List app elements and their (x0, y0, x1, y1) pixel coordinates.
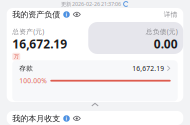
staticText: 16,672.19 (12, 36, 67, 52)
staticText: i (65, 115, 67, 122)
staticText: 总负债(元) (146, 27, 178, 36)
staticText: 存款 (19, 64, 33, 72)
staticText: 100.00% (19, 76, 47, 85)
staticText: 详情 (164, 10, 178, 19)
button[interactable]: Info (60, 115, 70, 122)
button[interactable]: Toggle balance visibility (70, 11, 81, 18)
button[interactable]: Refresh (123, 1, 129, 7)
staticText: 我的本月收支 (12, 114, 60, 123)
button[interactable]: 详情 (164, 10, 178, 19)
staticText: 万 (14, 53, 19, 60)
staticText: i (65, 11, 67, 18)
staticText: 总资产(元) (12, 27, 44, 36)
button[interactable]: Toggle balance visibility (70, 115, 81, 122)
staticText: 我的资产负债 (12, 10, 60, 19)
button[interactable]: 存款 (12, 60, 178, 76)
staticText: 更新 2026-02-26 21:37:06 (61, 0, 121, 8)
staticText: 0.00 (154, 36, 178, 52)
button[interactable]: Info (60, 11, 70, 18)
button[interactable]: Collapse (12, 101, 178, 108)
staticText: 16,672.19 (132, 64, 164, 73)
